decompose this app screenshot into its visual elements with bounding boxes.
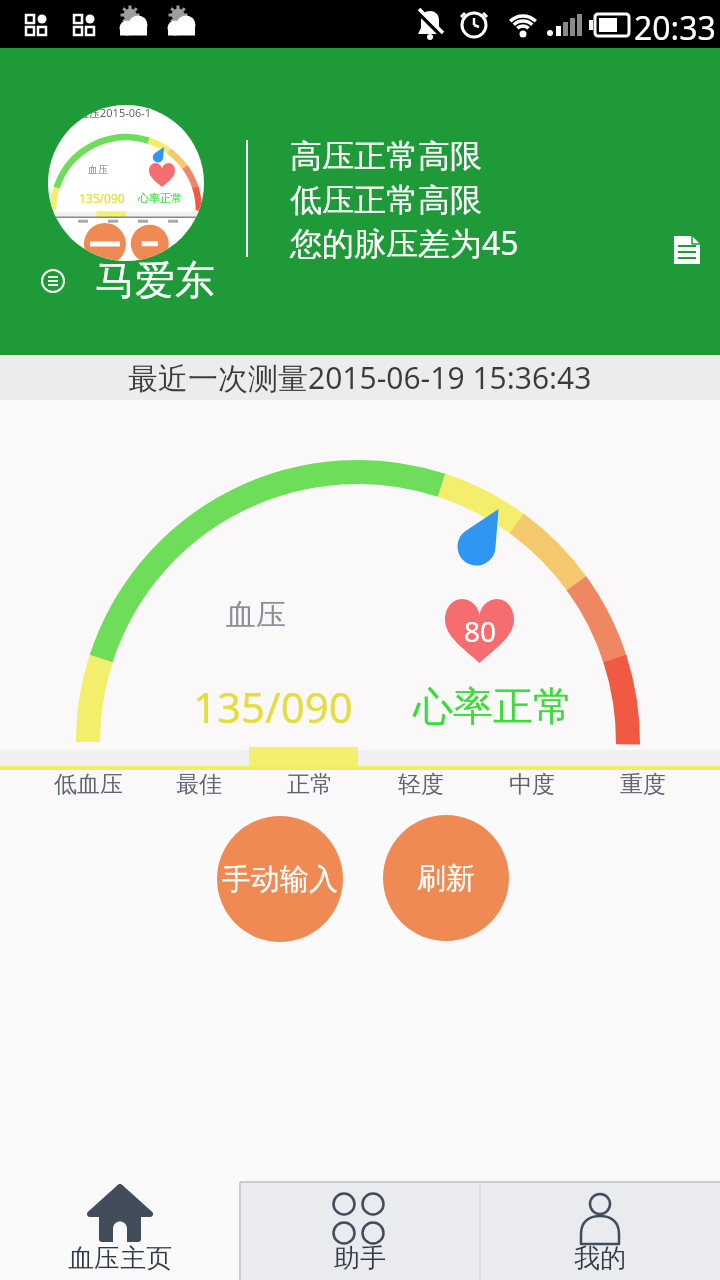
staticText: 手动输入: [222, 861, 338, 898]
button[interactable]: 我的: [480, 1182, 720, 1280]
staticText: 20:33: [634, 6, 716, 50]
staticText: 80: [464, 612, 497, 650]
button[interactable]: 助手: [240, 1182, 480, 1280]
staticText: 血压主页: [68, 1242, 172, 1275]
button[interactable]: 血压主页: [0, 1180, 240, 1280]
staticText: 心率正常: [413, 681, 573, 731]
staticText: 最近一次测量2015-06-19 15:36:43: [128, 357, 592, 398]
staticText: 血压: [226, 596, 286, 634]
staticText: 血压: [88, 163, 108, 176]
staticText: 助手: [334, 1242, 386, 1275]
staticText: 低血压: [54, 770, 123, 799]
staticText: 心率正常: [138, 191, 182, 205]
button[interactable]: [41, 269, 65, 293]
staticText: 您的脉压差为45: [290, 221, 519, 265]
button[interactable]: 血压2015-06-1: [48, 105, 204, 261]
staticText: 血压2015-06-1: [78, 105, 152, 120]
staticText: 重度: [620, 770, 666, 799]
staticText: 中度: [509, 770, 555, 799]
staticText: 最佳: [176, 770, 222, 799]
button[interactable]: [672, 234, 702, 266]
staticText: 轻度: [398, 770, 444, 799]
staticText: 我的: [574, 1242, 626, 1275]
staticText: 135/090: [79, 190, 125, 206]
staticText: 135/090: [193, 678, 353, 735]
staticText: 马爱东: [95, 255, 215, 305]
button[interactable]: 手动输入: [217, 816, 343, 942]
button[interactable]: 刷新: [383, 815, 509, 941]
staticText: 低压正常高限: [290, 180, 482, 220]
staticText: 高压正常高限: [290, 136, 482, 176]
staticText: 正常: [287, 770, 333, 799]
staticText: 刷新: [417, 860, 475, 897]
